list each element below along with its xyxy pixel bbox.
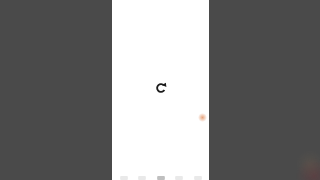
button[interactable]: Navigation item [154,174,168,180]
button[interactable]: Navigation item [172,174,186,180]
button[interactable]: Reload [150,77,172,99]
button[interactable]: Navigation item [117,174,131,180]
button[interactable]: Navigation item [191,174,205,180]
button[interactable]: Navigation item [135,174,149,180]
